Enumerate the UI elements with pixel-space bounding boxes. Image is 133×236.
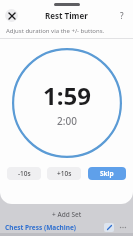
- staticText: -10s: [18, 169, 31, 178]
- button[interactable]: +10s: [47, 167, 81, 180]
- button[interactable]: Help: [115, 9, 128, 22]
- button[interactable]: Close: [5, 9, 18, 22]
- staticText: 2:00: [57, 114, 77, 128]
- staticText: Adjust duration via the +/- buttons.: [6, 27, 105, 35]
- staticText: +10s: [57, 169, 72, 178]
- staticText: ?: [120, 10, 124, 21]
- staticText: Skip: [100, 169, 114, 178]
- button[interactable]: + Add Set: [0, 208, 133, 221]
- staticText: 1:59: [43, 79, 91, 112]
- button[interactable]: Skip: [88, 167, 126, 180]
- button[interactable]: More options: [118, 223, 128, 232]
- staticText: + Add Set: [52, 210, 82, 219]
- button[interactable]: -10s: [7, 167, 41, 180]
- button[interactable]: Edit: [104, 223, 114, 232]
- staticText: Rest Timer: [45, 10, 88, 21]
- button[interactable]: Chest Press (Machine): [5, 223, 77, 232]
